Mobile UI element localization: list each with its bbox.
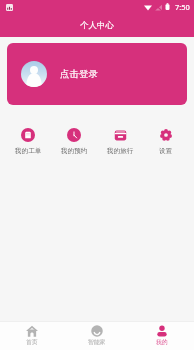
button[interactable]: 首页 [0, 322, 64, 345]
staticText: 我的预约 [61, 147, 88, 155]
staticText: 7:50 [175, 2, 190, 12]
button[interactable]: 我的 [129, 322, 194, 345]
staticText: 智能家 [88, 338, 106, 345]
staticText: 点击登录 [60, 68, 98, 80]
staticText: 我的旅行 [107, 147, 134, 155]
button[interactable]: 我的预约 [51, 128, 97, 155]
staticText: 我的 [156, 338, 168, 345]
staticText: 我的工单 [15, 147, 42, 155]
button[interactable]: 我的旅行 [97, 128, 143, 155]
staticText: 个人中心 [80, 20, 114, 31]
staticText: 首页 [26, 338, 38, 345]
staticText: 设置 [159, 147, 173, 155]
button[interactable]: 设置 [143, 128, 189, 155]
button[interactable]: 智能家 [64, 322, 129, 345]
button[interactable]: 点击登录 [7, 43, 187, 105]
button[interactable]: 我的工单 [5, 128, 51, 155]
